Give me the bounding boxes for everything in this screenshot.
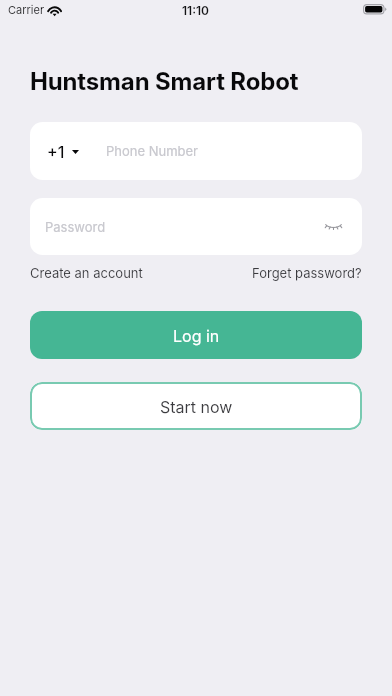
staticText: Huntsman Smart Robot (30, 67, 299, 96)
staticText: Phone Number (106, 143, 199, 159)
staticText: Forget password? (252, 265, 362, 281)
staticText: +1 (47, 142, 65, 161)
staticText: Start now (160, 397, 233, 416)
staticText: Carrier (8, 3, 45, 16)
button[interactable]: Show password (311, 205, 355, 249)
button[interactable]: Password (30, 198, 362, 255)
button[interactable]: Create an account (30, 255, 143, 281)
button[interactable]: Start now (30, 382, 362, 430)
button[interactable]: +1 (30, 122, 362, 180)
button[interactable]: Log in (30, 311, 362, 359)
staticText: Create an account (30, 265, 143, 281)
staticText: 11:10 (182, 3, 209, 18)
button[interactable]: Forget password? (252, 255, 362, 281)
button[interactable]: +1 (47, 142, 79, 161)
staticText: Log in (173, 326, 220, 345)
staticText: Password (45, 219, 106, 235)
